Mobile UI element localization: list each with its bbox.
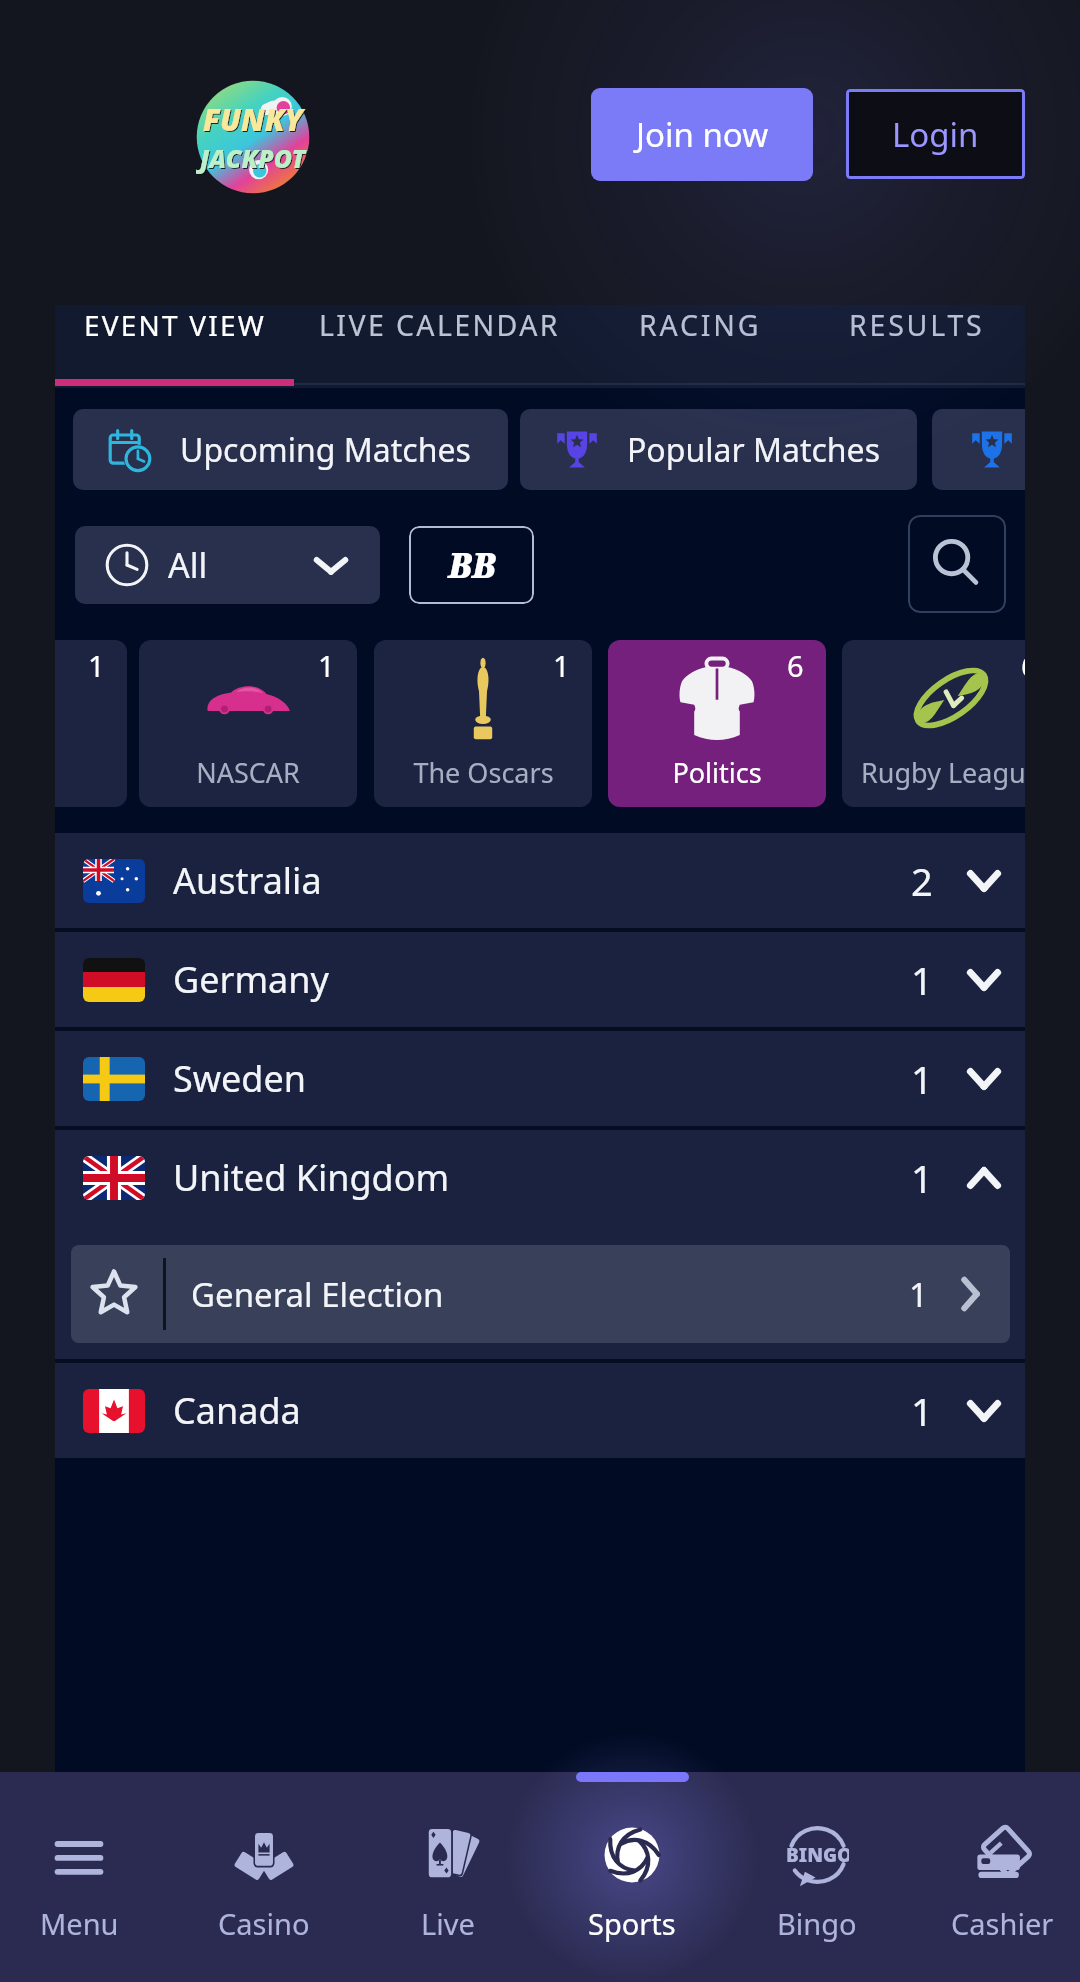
staticText: Sports: [588, 1904, 676, 1943]
button[interactable]: 1: [139, 640, 357, 807]
staticText: Sweden: [173, 1054, 307, 1103]
staticText: 1: [88, 646, 105, 685]
staticText: Rugby League: [861, 754, 1025, 791]
staticText: RESULTS: [849, 306, 985, 345]
staticText: Germany: [173, 955, 329, 1004]
button[interactable]: All: [75, 526, 380, 604]
button[interactable]: EVENT VIEW: [55, 305, 294, 345]
staticText: Australia: [173, 856, 322, 905]
staticText: NASCAR: [196, 754, 300, 791]
button[interactable]: BINGO!: [725, 1772, 909, 1982]
staticText: Login: [892, 112, 979, 157]
button[interactable]: General Election: [71, 1245, 1010, 1343]
staticText: FUNKY: [203, 99, 303, 140]
staticText: LIVE CALENDAR: [319, 306, 560, 345]
staticText: 1: [909, 1272, 928, 1317]
button[interactable]: Upcoming Matches: [73, 409, 508, 490]
staticText: Bingo: [777, 1904, 857, 1943]
staticText: 6: [787, 646, 804, 685]
staticText: Live: [421, 1904, 475, 1943]
button[interactable]: Germany: [55, 932, 1025, 1027]
staticText: EVENT VIEW: [84, 306, 266, 344]
button[interactable]: Popular Matches: [520, 409, 917, 490]
button[interactable]: Cashier: [910, 1772, 1080, 1982]
staticText: Politics: [672, 754, 762, 791]
button[interactable]: Menu: [0, 1772, 171, 1982]
staticText: Casino: [218, 1904, 310, 1943]
staticText: BB: [448, 542, 496, 588]
button[interactable]: 6: [608, 640, 826, 807]
staticText: BINGO!: [786, 1842, 849, 1868]
button[interactable]: Canada: [55, 1363, 1025, 1458]
button[interactable]: United Kingdom: [55, 1130, 1025, 1225]
staticText: 1: [553, 646, 570, 685]
button[interactable]: Bet Builder: [409, 526, 534, 604]
button[interactable]: Search: [908, 515, 1006, 613]
button[interactable]: RACING: [585, 305, 816, 345]
button[interactable]: Australia: [55, 833, 1025, 928]
staticText: Cashier: [951, 1904, 1054, 1943]
staticText: Canada: [173, 1386, 301, 1435]
staticText: The Oscars: [413, 754, 554, 791]
staticText: 2: [911, 855, 933, 907]
staticText: 1: [318, 646, 335, 685]
staticText: JACKPOT: [200, 141, 306, 175]
staticText: Upcoming Matches: [180, 428, 471, 472]
button[interactable]: Join now: [591, 88, 813, 181]
button[interactable]: Casino: [172, 1772, 356, 1982]
staticText: 6: [1021, 646, 1025, 685]
staticText: Menu: [40, 1904, 119, 1943]
staticText: Join now: [636, 112, 769, 157]
staticText: United Kingdom: [173, 1153, 450, 1202]
button[interactable]: 1: [55, 640, 127, 807]
button[interactable]: 6: [842, 640, 1025, 807]
button[interactable]: Sports: [540, 1772, 724, 1982]
staticText: General Election: [191, 1272, 444, 1317]
button[interactable]: 1: [374, 640, 592, 807]
button[interactable]: RESULTS: [812, 305, 1022, 345]
staticText: JACKPOT: [201, 142, 307, 176]
button[interactable]: LIVE CALENDAR: [294, 305, 584, 345]
staticText: 1: [911, 954, 933, 1006]
button[interactable]: Live: [356, 1772, 540, 1982]
staticText: FUNKY: [204, 100, 304, 141]
staticText: Popular Matches: [627, 428, 880, 472]
staticText: 1: [911, 1053, 933, 1105]
staticText: 1: [911, 1385, 933, 1437]
button[interactable]: [932, 409, 1025, 490]
button[interactable]: Login: [846, 89, 1025, 179]
staticText: 1: [911, 1152, 933, 1204]
button[interactable]: Sweden: [55, 1031, 1025, 1126]
staticText: All: [168, 542, 208, 588]
staticText: RACING: [639, 306, 762, 345]
